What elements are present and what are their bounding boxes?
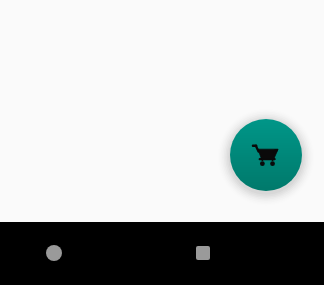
button[interactable]: Shopping cart	[230, 119, 302, 191]
button[interactable]: Home	[30, 229, 78, 277]
button[interactable]: Recent apps	[179, 229, 227, 277]
